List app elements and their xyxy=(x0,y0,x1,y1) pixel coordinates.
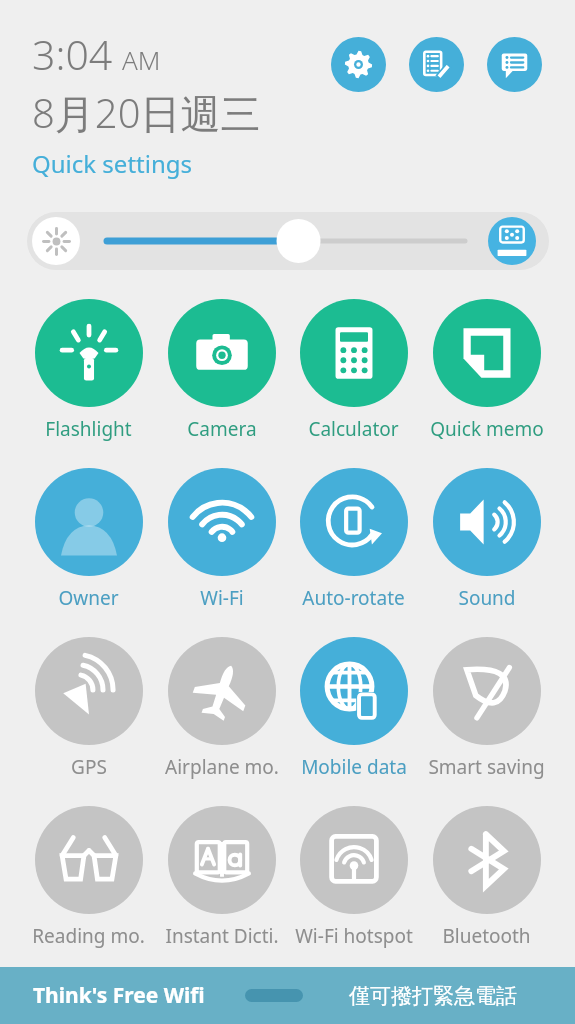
staticText: Think's Free Wifi xyxy=(33,981,205,1010)
button[interactable]: Flashlight xyxy=(25,299,152,442)
button[interactable]: Smart saving xyxy=(423,637,550,780)
button[interactable]: Calculator xyxy=(290,299,417,442)
button[interactable]: Camera xyxy=(158,299,285,442)
button[interactable]: Airplane mo. xyxy=(158,637,285,780)
button[interactable]: Edit quick settings xyxy=(409,37,464,92)
staticText: 僅可撥打緊急電話 xyxy=(349,983,517,1009)
staticText: Reading mo. xyxy=(32,923,145,949)
button[interactable]: Owner xyxy=(25,468,152,611)
staticText: 8月20日週三 xyxy=(32,85,261,140)
button[interactable]: Notifications xyxy=(487,37,542,92)
staticText: Wi-Fi hotspot xyxy=(295,923,413,949)
staticText: Quick settings xyxy=(32,147,192,180)
button[interactable]: Bluetooth xyxy=(423,806,550,949)
button[interactable]: Wi-Fi hotspot xyxy=(290,806,417,949)
button[interactable]: Settings xyxy=(331,37,386,92)
button[interactable]: Sound xyxy=(423,468,550,611)
staticText: Camera xyxy=(187,416,257,442)
button[interactable]: GPS xyxy=(25,637,152,780)
staticText: AM xyxy=(122,42,161,77)
staticText: Instant Dicti. xyxy=(165,923,279,949)
staticText: Flashlight xyxy=(45,416,132,442)
button[interactable]: Auto brightness xyxy=(488,217,536,265)
staticText: 3:04 xyxy=(32,26,113,82)
staticText: Owner xyxy=(58,585,119,611)
staticText: Airplane mo. xyxy=(165,754,279,780)
staticText: Wi-Fi xyxy=(200,585,244,611)
staticText: Auto-rotate xyxy=(302,585,405,611)
staticText: Bluetooth xyxy=(442,923,531,949)
button[interactable]: Think's Free Wifi xyxy=(0,967,575,1024)
button[interactable]: Instant Dicti. xyxy=(158,806,285,949)
button[interactable]: Brightness xyxy=(27,212,549,270)
staticText: Quick memo xyxy=(430,416,544,442)
button[interactable]: Quick memo xyxy=(423,299,550,442)
staticText: Calculator xyxy=(308,416,399,442)
button[interactable]: Reading mo. xyxy=(25,806,152,949)
staticText: GPS xyxy=(71,754,107,780)
button[interactable]: Auto-rotate xyxy=(290,468,417,611)
staticText: Smart saving xyxy=(428,754,545,780)
button[interactable]: Mobile data xyxy=(290,637,417,780)
button[interactable]: Wi-Fi xyxy=(158,468,285,611)
other: Brightness xyxy=(32,217,80,265)
staticText: Mobile data xyxy=(301,754,407,780)
staticText: Sound xyxy=(458,585,516,611)
